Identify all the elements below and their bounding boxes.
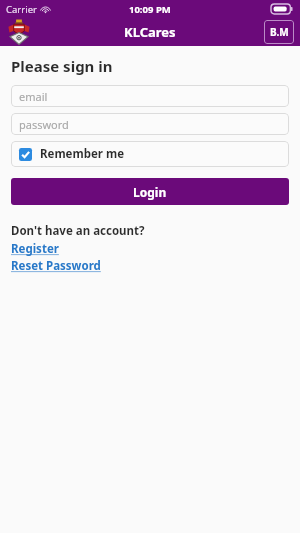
staticText: Register [11,241,59,257]
staticText: Remember me [40,146,125,162]
staticText: Don't have an account? [11,223,145,239]
staticText: 10:09 PM [129,3,171,16]
button[interactable]: B.M [264,20,294,44]
button[interactable]: Register [11,241,59,257]
staticText: Please sign in [11,56,113,76]
button[interactable]: password [11,113,289,135]
staticText: KLCares [124,23,176,41]
button[interactable]: Remember me [11,141,289,167]
button[interactable]: Reset Password [11,258,101,274]
button[interactable]: Login [11,178,289,205]
staticText: email [19,89,48,104]
staticText: Carrier [6,3,37,16]
staticText: B.M [270,25,289,39]
staticText: password [19,117,69,132]
staticText: Reset Password [11,258,101,274]
button[interactable]: Home crest logo [7,19,31,45]
button[interactable]: email [11,85,289,107]
staticText: Login [133,184,167,200]
